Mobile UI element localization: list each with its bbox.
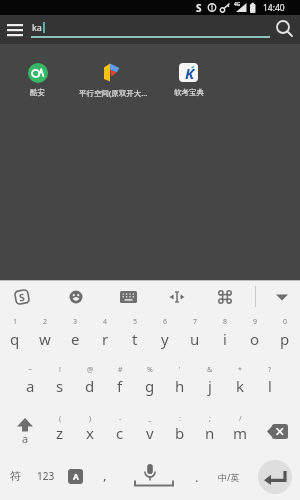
staticText: 5 [133, 317, 138, 327]
button[interactable] [260, 416, 294, 446]
staticText: j [208, 376, 212, 396]
staticText: ( [59, 414, 62, 424]
button[interactable]: r [90, 329, 120, 349]
staticText: A [73, 471, 79, 483]
button[interactable]: w [30, 329, 60, 349]
staticText: 4 [103, 317, 108, 327]
button[interactable]: K [179, 63, 198, 82]
staticText: K [185, 63, 195, 82]
button[interactable]: l [255, 376, 285, 396]
staticText: u [190, 329, 200, 349]
button[interactable] [113, 458, 187, 496]
staticText: f [117, 376, 123, 396]
button[interactable]: n [195, 423, 225, 443]
button[interactable]: p [270, 329, 300, 349]
staticText: 6 [163, 317, 168, 327]
button[interactable]: b [165, 423, 195, 443]
button[interactable]: m [225, 423, 255, 443]
button[interactable]: g [135, 376, 165, 396]
staticText: 符 [10, 469, 21, 483]
staticText: i [223, 329, 227, 349]
staticText: - [119, 414, 122, 424]
button[interactable]: q [0, 329, 30, 349]
staticText: v [146, 423, 154, 443]
staticText: s [56, 376, 64, 396]
button[interactable]: f [105, 376, 135, 396]
staticText: 7 [193, 317, 198, 327]
staticText: # [118, 365, 123, 375]
staticText: 软考宝典 [174, 88, 204, 97]
button[interactable]: A [68, 469, 83, 484]
button[interactable]: a [15, 376, 45, 396]
staticText: y [161, 329, 169, 349]
button[interactable]: 中/英 [210, 468, 248, 486]
staticText: ka [32, 21, 42, 33]
button[interactable]: 符 [1, 467, 29, 485]
staticText: w [39, 329, 51, 349]
button[interactable]: i [210, 329, 240, 349]
staticText: ' [179, 365, 181, 375]
staticText: d [85, 376, 95, 396]
button[interactable]: c [105, 423, 135, 443]
staticText: a [26, 376, 35, 396]
button[interactable] [114, 284, 142, 310]
staticText: 酷安 [30, 88, 45, 97]
staticText: ; [209, 414, 211, 424]
staticText: h [175, 376, 185, 396]
button[interactable]: , [93, 466, 117, 484]
button[interactable]: h [165, 376, 195, 396]
button[interactable]: o [240, 329, 270, 349]
staticText: o [250, 329, 260, 349]
button[interactable] [268, 284, 296, 310]
staticText: 4G [234, 1, 241, 8]
staticText: x [86, 423, 94, 443]
staticText: , [103, 466, 107, 484]
staticText: t [132, 329, 138, 349]
staticText: ? [268, 365, 272, 375]
staticText: * [238, 365, 242, 375]
staticText: 2 [43, 317, 48, 327]
staticText: q [10, 329, 20, 349]
staticText: @ [87, 365, 94, 375]
staticText: 1 [13, 317, 18, 327]
staticText: ) [89, 414, 92, 424]
staticText: 8 [223, 317, 228, 327]
button[interactable]: j [195, 376, 225, 396]
button[interactable]: s [45, 376, 75, 396]
button[interactable]: e [60, 329, 90, 349]
button[interactable]: x [75, 423, 105, 443]
button[interactable] [2, 19, 28, 41]
staticText: . [195, 468, 199, 486]
staticText: S [18, 290, 26, 304]
button[interactable]: t [120, 329, 150, 349]
staticText: : [179, 414, 181, 424]
staticText: 9 [253, 317, 258, 327]
button[interactable]: a [9, 414, 41, 450]
button[interactable]: S [8, 284, 36, 310]
button[interactable] [97, 57, 127, 87]
staticText: l [268, 376, 272, 396]
button[interactable] [62, 284, 90, 310]
button[interactable] [211, 284, 239, 310]
button[interactable] [258, 460, 292, 494]
staticText: 中/英 [218, 471, 240, 483]
button[interactable]: d [75, 376, 105, 396]
button[interactable] [163, 284, 191, 310]
staticText: / [239, 414, 242, 424]
staticText: 0 [283, 317, 288, 327]
staticText: n [205, 423, 215, 443]
button[interactable] [271, 17, 298, 42]
staticText: e [71, 329, 80, 349]
staticText: 平行空间(原双开大... [79, 88, 148, 98]
button[interactable] [23, 58, 53, 88]
button[interactable]: v [135, 423, 165, 443]
staticText: ! [59, 365, 61, 375]
button[interactable]: u [180, 329, 210, 349]
button[interactable]: 123 [32, 467, 60, 485]
button[interactable]: z [45, 423, 75, 443]
staticText: k [236, 376, 245, 396]
button[interactable]: k [225, 376, 255, 396]
button[interactable]: . [185, 468, 209, 486]
button[interactable]: y [150, 329, 180, 349]
staticText: 3 [73, 317, 78, 327]
